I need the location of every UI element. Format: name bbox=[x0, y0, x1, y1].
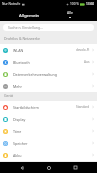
button[interactable]: Datenverkehrsverwaltung bbox=[0, 68, 97, 80]
staticText: Startbildschirm bbox=[13, 105, 39, 110]
staticText: Drahtlos & Netzwerke bbox=[4, 36, 40, 41]
staticText: Speicher bbox=[13, 141, 28, 146]
staticText: Mehr bbox=[13, 84, 22, 89]
staticText: Datenverkehrsverwaltung bbox=[13, 72, 57, 77]
staticText: Töne bbox=[13, 129, 22, 134]
button[interactable]: Akku bbox=[0, 149, 97, 161]
staticText: devolo-Pi bbox=[76, 48, 90, 52]
button[interactable]: Back bbox=[16, 162, 27, 173]
staticText: WLAN bbox=[13, 48, 24, 53]
button[interactable]: Display bbox=[0, 113, 97, 125]
button[interactable]: Home bbox=[43, 162, 54, 173]
button[interactable]: Startbildschirm bbox=[0, 101, 97, 113]
staticText: Suche n. Einstellung... bbox=[8, 25, 43, 30]
button[interactable]: Suche n. Einstellung... bbox=[3, 24, 94, 31]
staticText: 13:50 bbox=[86, 2, 95, 6]
button[interactable]: Allgemein bbox=[0, 8, 59, 21]
staticText: Nur Notrufe bbox=[2, 2, 21, 6]
button[interactable]: WLAN bbox=[0, 44, 97, 56]
button[interactable]: Alle bbox=[59, 8, 81, 21]
staticText: Alle bbox=[67, 10, 73, 15]
staticText: Allgemein bbox=[19, 12, 40, 18]
staticText: 100 % bbox=[70, 2, 79, 6]
staticText: Display bbox=[13, 117, 26, 122]
button[interactable]: Töne bbox=[0, 125, 97, 137]
button[interactable]: Speicher bbox=[0, 137, 97, 149]
staticText: Standard bbox=[76, 105, 90, 109]
button[interactable]: Recents bbox=[70, 162, 81, 173]
staticText: Aus bbox=[84, 60, 90, 64]
button[interactable]: Mehr bbox=[0, 80, 97, 92]
staticText: Gerät bbox=[4, 93, 14, 98]
button[interactable]: Bluetooth bbox=[0, 56, 97, 68]
staticText: Bluetooth bbox=[13, 60, 30, 65]
staticText: Akku bbox=[13, 153, 22, 158]
